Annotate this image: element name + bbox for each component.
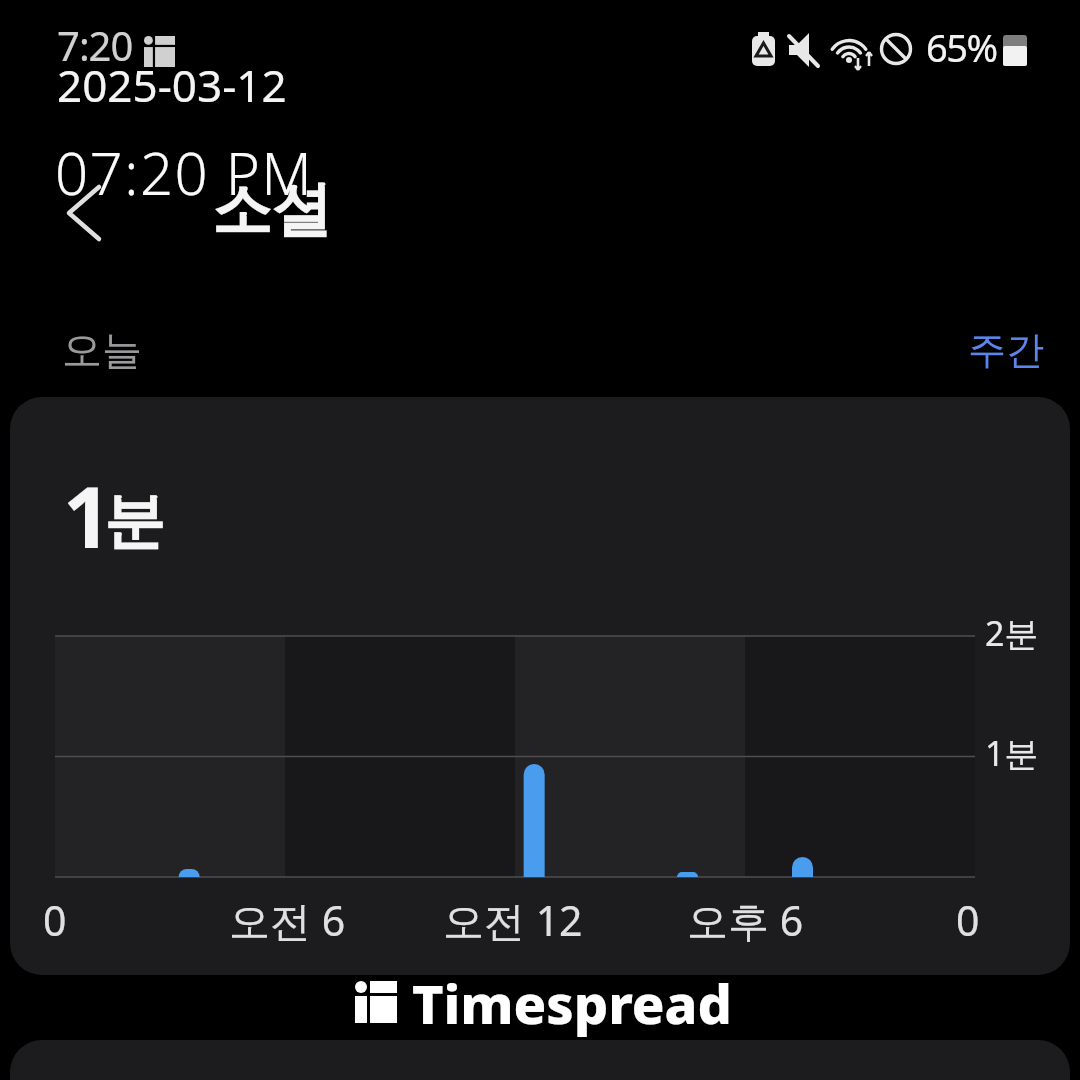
staticText: 오전 12: [443, 892, 583, 948]
staticText: 주간: [968, 326, 1044, 374]
staticText: 07:20 PM: [55, 133, 314, 212]
staticText: 0: [43, 892, 67, 948]
staticText: 오늘: [62, 325, 142, 375]
staticText: 2분: [985, 610, 1039, 656]
staticText: Timespread: [412, 966, 732, 1040]
button[interactable]: [40, 170, 130, 260]
button[interactable]: 주간: [951, 315, 1061, 385]
staticText: 0: [956, 892, 980, 948]
staticText: 7:20: [57, 18, 133, 72]
staticText: 1: [63, 458, 112, 572]
staticText: 소셜: [212, 172, 332, 248]
staticText: 2025-03-12: [57, 55, 287, 115]
staticText: 오후 6: [687, 892, 804, 948]
staticText: 65%: [926, 21, 997, 73]
staticText: 분: [104, 483, 165, 560]
staticText: 오전 6: [229, 892, 346, 948]
staticText: 1분: [985, 730, 1039, 776]
button[interactable]: 오늘: [42, 315, 162, 385]
